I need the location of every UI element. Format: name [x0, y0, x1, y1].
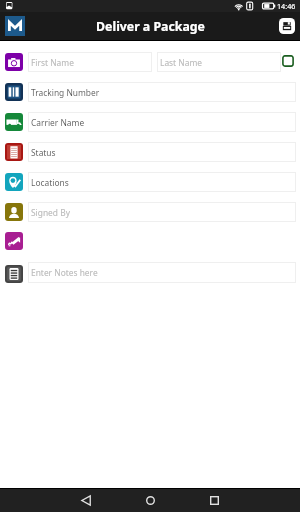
button[interactable]: Back	[74, 489, 98, 512]
button[interactable]: Signed By	[28, 202, 296, 222]
button[interactable]: Home	[138, 489, 162, 512]
button[interactable]: Carrier Name	[28, 112, 296, 132]
button[interactable]: First Name	[28, 52, 152, 72]
staticText: First Name	[31, 57, 74, 68]
button[interactable]: Take photo	[5, 53, 23, 71]
staticText: Locations	[31, 177, 69, 188]
button[interactable]: App logo	[5, 16, 25, 36]
staticText: Carrier Name	[31, 117, 85, 128]
button[interactable]: Save	[279, 18, 295, 34]
button[interactable]: Recent apps	[202, 489, 226, 512]
button[interactable]: Last Name	[157, 52, 281, 72]
button[interactable]: Status	[28, 142, 296, 162]
button[interactable]: Tracking Number	[28, 82, 296, 102]
button[interactable]: Signature	[5, 232, 23, 250]
button[interactable]: Scan barcode	[5, 83, 23, 101]
staticText: Status	[31, 147, 56, 158]
button[interactable]: Status	[5, 143, 23, 161]
staticText: Enter Notes here	[31, 267, 98, 278]
staticText: Deliver a Package	[96, 18, 205, 35]
button[interactable]: Location	[5, 173, 23, 191]
button[interactable]: Notes	[5, 265, 23, 283]
button[interactable]: Carrier	[5, 113, 23, 131]
staticText: 14:46	[277, 1, 296, 11]
button[interactable]: Locations	[28, 172, 296, 192]
staticText: Tracking Number	[31, 87, 100, 98]
button[interactable]: Delivered checkbox	[282, 55, 294, 67]
staticText: Last Name	[160, 57, 202, 68]
button[interactable]: Enter Notes here	[28, 262, 296, 283]
staticText: Signed By	[31, 207, 70, 218]
button[interactable]: Signed by	[5, 203, 23, 221]
